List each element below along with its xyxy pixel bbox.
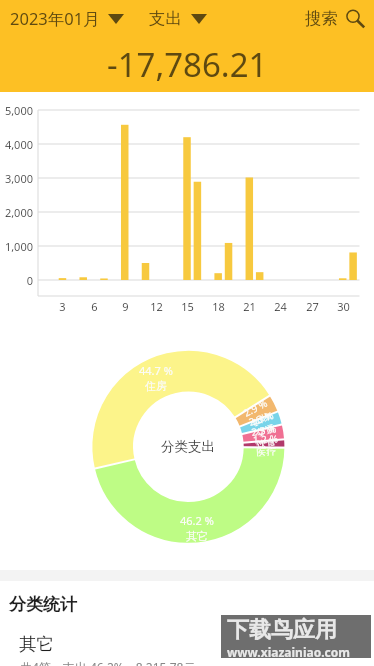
staticText: 其它 [186,529,208,543]
staticText: 下载鸟应用 [227,616,337,644]
staticText: 医疗 [256,446,276,456]
staticText: 搜索 [305,8,338,29]
staticText: 18 [212,299,225,314]
staticText: 分类统计 [9,594,77,615]
staticText: 44.7 % [139,363,173,378]
staticText: 交通 [254,422,276,437]
staticText: 共4笔，支出 46.2%，8,215.78元 [20,659,196,666]
staticText: 1.2 % [252,431,279,446]
staticText: 3 [59,299,66,314]
staticText: 其它 [19,633,54,655]
staticText: 分类支出 [161,438,215,455]
staticText: 15 [181,299,194,314]
staticText: 4,000 [4,137,33,152]
staticText: 6 [91,299,98,314]
staticText: 支出 [149,8,182,29]
staticText: 12 [150,299,163,314]
staticText: -17,786.21 [107,42,268,87]
staticText: 2.9 % [241,395,270,420]
staticText: 购物 [250,409,272,427]
staticText: 9 [122,299,129,314]
staticText: 1,000 [4,239,33,254]
staticText: 2.3 % [247,408,276,429]
staticText: 住房 [145,379,167,393]
other: Search [345,9,365,28]
staticText: 24 [274,299,287,314]
staticText: www.xiazainiao.com [227,644,350,660]
staticText: 3,000 [4,171,33,186]
staticText: 5,000 [4,103,33,118]
staticText: 2,000 [4,205,33,220]
button[interactable]: 搜索 [305,4,374,33]
button[interactable]: 2023年01月 [0,3,126,34]
staticText: 21 [243,299,256,314]
staticText: 30 [337,299,350,314]
staticText: 饮食 [255,435,277,448]
button[interactable]: 支出 [147,4,209,33]
staticText: 27 [306,299,319,314]
staticText: 2023年01月 [10,7,100,30]
staticText: 0 [26,273,33,288]
staticText: 2.5 % [250,421,278,439]
staticText: 46.2 % [180,513,214,528]
